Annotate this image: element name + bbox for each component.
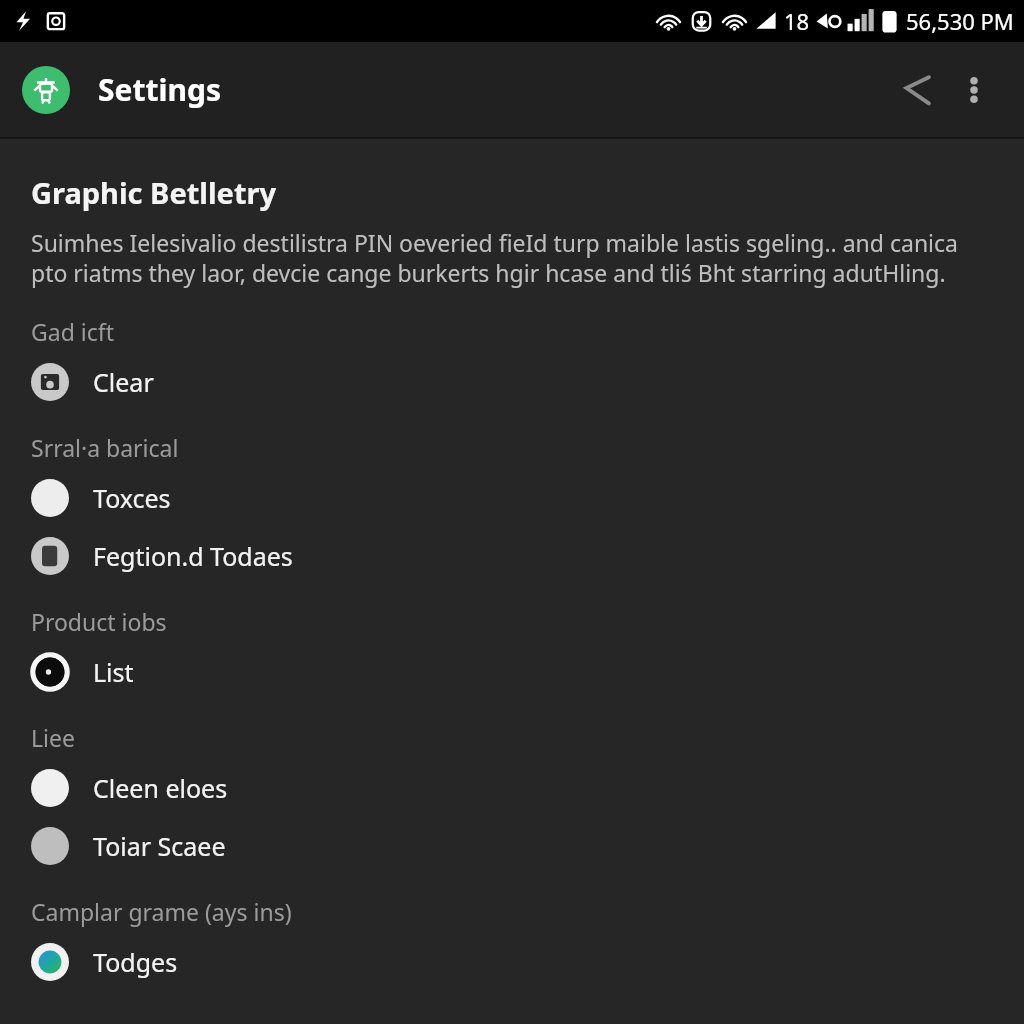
staticText: 18 [784, 6, 810, 36]
button[interactable]: Toxces [31, 469, 993, 527]
button[interactable]: Share [890, 62, 946, 118]
staticText: Liee [31, 722, 75, 753]
staticText: Product iobs [31, 606, 167, 637]
staticText: Toiar Scaee [93, 829, 226, 863]
staticText: Camplar grame (ays ins) [31, 896, 292, 927]
staticText: Graphic Betlletry [31, 173, 276, 212]
button[interactable]: Fegtion.d Todaes [31, 527, 993, 585]
staticText: List [93, 655, 134, 689]
staticText: Cleen eloes [93, 771, 228, 805]
staticText: Gad icft [31, 316, 114, 347]
staticText: 56,530 PM [906, 6, 1014, 36]
button[interactable]: Clear [31, 353, 993, 411]
staticText: Toxces [93, 481, 171, 515]
staticText: Clear [93, 365, 154, 399]
button[interactable]: Toiar Scaee [31, 817, 993, 875]
button[interactable]: Todges [31, 933, 993, 991]
staticText: Suimhes Ielesivalio destilistra PIN oeve… [31, 227, 993, 289]
staticText: Fegtion.d Todaes [93, 539, 293, 573]
staticText: Settings [98, 69, 221, 110]
staticText: Todges [93, 945, 178, 979]
staticText: Srral·a barical [31, 432, 179, 463]
button[interactable]: Cleen eloes [31, 759, 993, 817]
button[interactable]: App icon [22, 66, 70, 114]
button[interactable]: List [31, 643, 993, 701]
button[interactable]: More options [946, 62, 1002, 118]
